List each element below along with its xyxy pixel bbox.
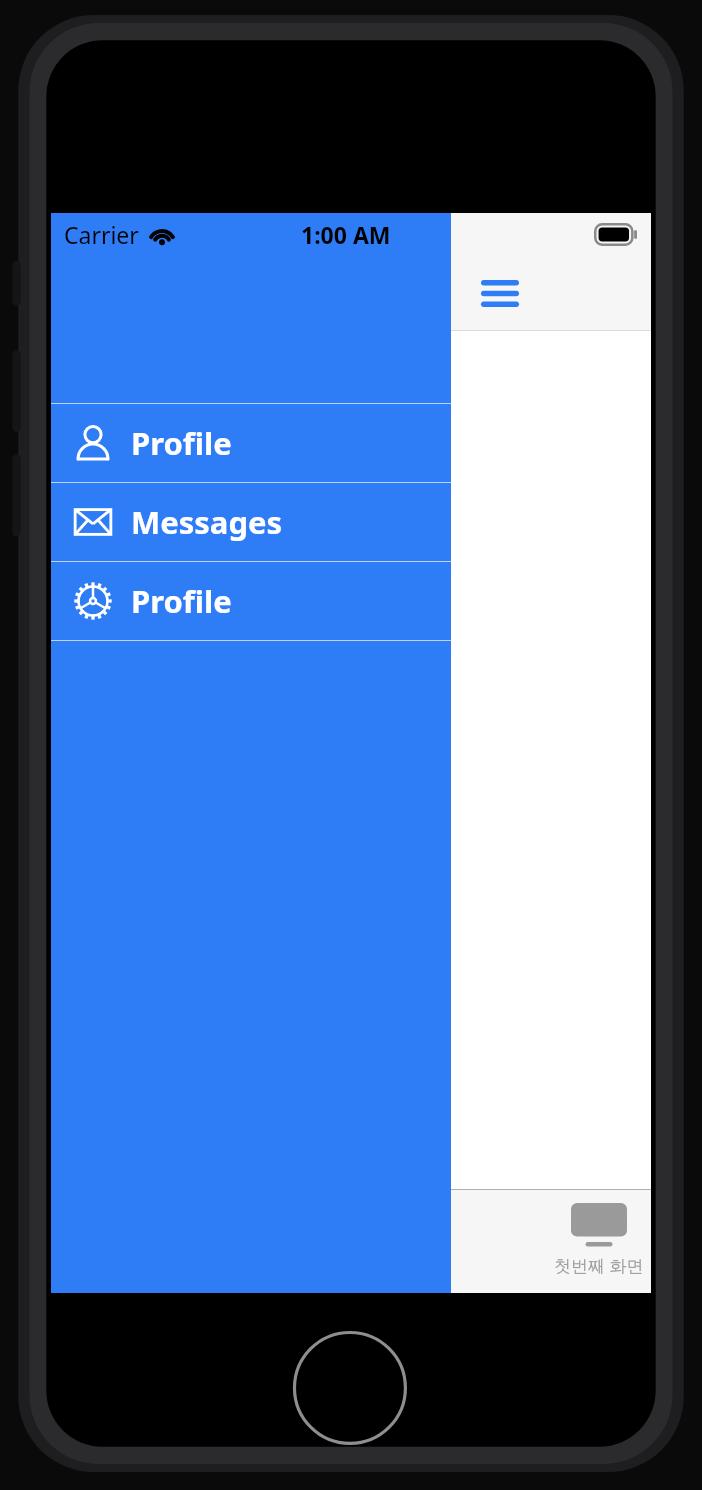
button[interactable]: Open navigation drawer bbox=[471, 264, 529, 322]
staticText: Profile bbox=[131, 580, 232, 622]
staticText: Profile bbox=[131, 422, 232, 464]
staticText: Messages bbox=[131, 501, 283, 543]
staticText: Carrier bbox=[64, 219, 139, 250]
staticText: 1:00 AM bbox=[301, 219, 391, 250]
button[interactable]: Profile bbox=[51, 562, 451, 640]
button[interactable]: Messages bbox=[51, 483, 451, 561]
staticText: 첫번째 화면 bbox=[554, 1254, 644, 1277]
button[interactable]: Profile bbox=[51, 404, 451, 482]
button[interactable]: 첫번째 화면 bbox=[547, 1190, 651, 1293]
